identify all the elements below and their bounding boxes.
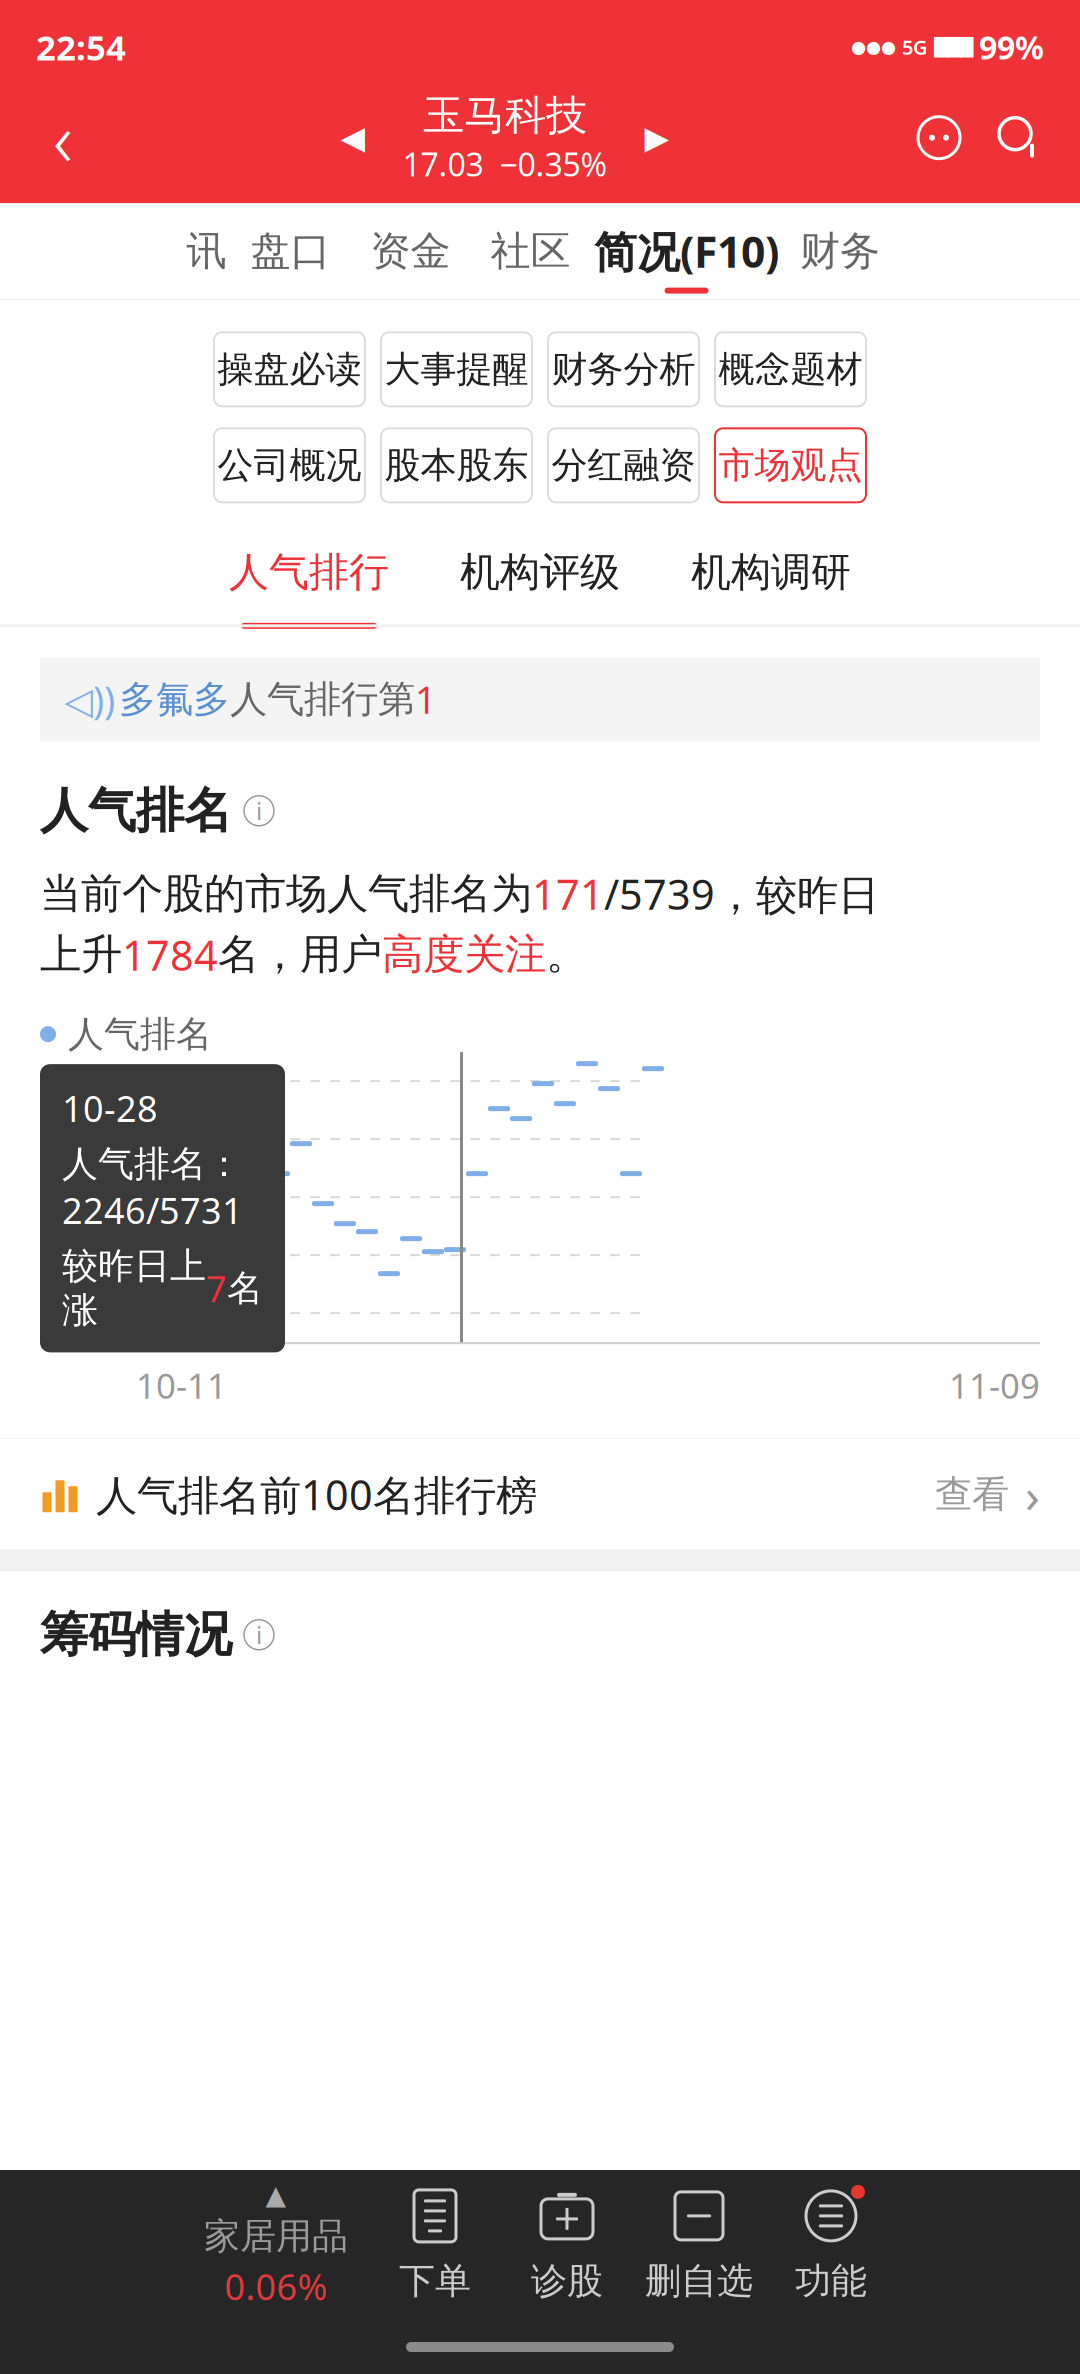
staticText: 筹码情况 <box>40 1605 232 1664</box>
button[interactable]: ◁)) <box>0 627 1080 741</box>
staticText: 家居用品 <box>204 2214 348 2258</box>
staticText: 公司概况 <box>217 443 361 487</box>
button[interactable]: 市场观点 <box>715 428 866 502</box>
button[interactable]: 机构调研 <box>655 528 886 624</box>
staticText: i <box>256 795 262 827</box>
staticText: 1784 <box>122 927 218 982</box>
button[interactable]: 大事提醒 <box>381 332 532 406</box>
staticText: 17.03 −0.35% <box>402 143 607 185</box>
staticText: 下单 <box>399 2259 471 2303</box>
button[interactable]: Back <box>18 102 108 174</box>
button[interactable]: 诊股 <box>501 2170 633 2320</box>
button[interactable]: 下单 <box>369 2170 501 2320</box>
staticText: › <box>1025 1462 1040 1526</box>
button[interactable]: Next stock <box>630 102 684 174</box>
staticText: 机构调研 <box>691 548 851 597</box>
staticText: 人气排行第 <box>230 676 415 722</box>
staticText: 财务分析 <box>551 347 695 391</box>
staticText: 人气排名：2246/5731 <box>62 1142 243 1234</box>
staticText: 人气排名 <box>40 781 232 840</box>
staticText: ◀ <box>340 119 365 156</box>
button[interactable]: 股本股东 <box>381 428 532 502</box>
staticText: 名，用户 <box>218 929 382 980</box>
staticText: 2000 <box>43 1230 127 1280</box>
button[interactable]: 讯 <box>182 217 230 299</box>
staticText: 99% <box>979 26 1044 68</box>
staticText: 171 <box>532 866 604 921</box>
staticText: 1500 <box>43 1172 127 1222</box>
staticText: 财务 <box>800 227 880 276</box>
staticText: 2500 <box>43 1288 127 1338</box>
staticText: ▶ <box>644 119 669 156</box>
staticText: ▲ <box>265 2180 286 2210</box>
button[interactable]: 人气排行 <box>193 528 424 624</box>
button[interactable]: 删自选 <box>633 2170 765 2320</box>
staticText: 人气排名前100名排行榜 <box>96 1467 537 1522</box>
staticText: ◁)) <box>64 674 115 724</box>
staticText: 大事提醒 <box>384 347 528 391</box>
button[interactable]: 机构评级 <box>424 528 655 624</box>
staticText: 查看 <box>935 1471 1009 1517</box>
staticText: 社区 <box>490 227 570 276</box>
staticText: 讯 <box>186 227 226 276</box>
staticText: 22:54 <box>36 24 126 70</box>
button[interactable]: 简况(F10) <box>590 217 782 299</box>
button[interactable]: Search <box>976 102 1062 174</box>
button[interactable]: 人气排名前100名排行榜 <box>0 1439 1080 1549</box>
button[interactable]: 财务 <box>782 217 897 299</box>
staticText: 资金 <box>370 227 450 276</box>
staticText: 简况(F10) <box>594 223 779 280</box>
staticText: ‹ <box>53 88 73 187</box>
staticText: 5G <box>902 34 928 60</box>
staticText: 7 <box>206 1264 227 1312</box>
staticText: 操盘必读 <box>217 347 361 391</box>
button[interactable]: Previous stock <box>326 102 380 174</box>
staticText: 名 <box>227 1266 263 1310</box>
staticText: 股本股东 <box>384 443 528 487</box>
staticText: 较昨日上涨 <box>62 1244 206 1332</box>
staticText: 人气排名 <box>68 1012 212 1056</box>
button[interactable]: 盘口 <box>230 217 350 299</box>
staticText: 玉马科技 <box>423 90 587 141</box>
button[interactable]: 概念题材 <box>715 332 866 406</box>
staticText: 当前个股的市场人气排名为 <box>40 868 532 919</box>
button[interactable]: 分红融资 <box>548 428 699 502</box>
staticText: 盘口 <box>250 227 330 276</box>
staticText: ●●● <box>851 37 896 57</box>
staticText: 10-28 <box>62 1084 158 1132</box>
staticText: 上升 <box>40 929 122 980</box>
button[interactable]: Robot assistant <box>902 102 976 174</box>
staticText: 高度关注 <box>382 929 546 980</box>
staticText: 功能 <box>795 2259 867 2303</box>
staticText: /5739，较昨日 <box>604 866 879 921</box>
button[interactable]: Info about chip distribution <box>244 1620 274 1650</box>
staticText: 。 <box>546 929 587 980</box>
button[interactable]: 财务分析 <box>548 332 699 406</box>
button[interactable]: Info about popularity ranking <box>244 796 274 826</box>
button[interactable]: 社区 <box>470 217 590 299</box>
staticText: 10-11 <box>136 1362 227 1408</box>
button[interactable]: ▲ <box>183 2170 369 2320</box>
staticText: 分红融资 <box>551 443 695 487</box>
staticText: 1 <box>415 674 436 724</box>
button[interactable]: 操盘必读 <box>214 332 365 406</box>
staticText: 删自选 <box>645 2259 753 2303</box>
button[interactable]: 公司概况 <box>214 428 365 502</box>
staticText: 11-09 <box>949 1362 1040 1408</box>
staticText: 机构评级 <box>460 548 620 597</box>
staticText: 多氟多 <box>119 676 230 722</box>
staticText: 人气排行 <box>229 548 389 597</box>
staticText: 诊股 <box>531 2259 603 2303</box>
staticText: i <box>256 1619 262 1651</box>
staticText: 市场观点 <box>718 443 862 487</box>
staticText: 概念题材 <box>718 347 862 391</box>
button[interactable]: 功能 <box>765 2170 897 2320</box>
button[interactable]: 资金 <box>350 217 470 299</box>
staticText: 0.06% <box>224 2262 327 2310</box>
